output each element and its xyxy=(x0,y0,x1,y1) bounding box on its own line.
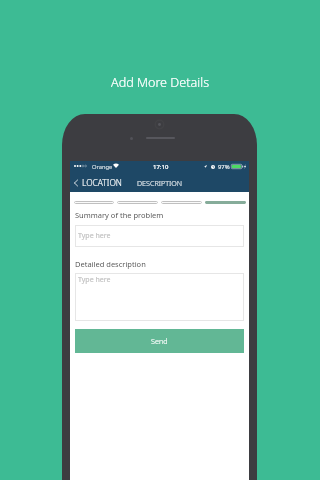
staticText: DESCRIPTION xyxy=(137,178,183,188)
button[interactable]: DESCRIPTION xyxy=(137,178,183,188)
staticText: LOCATION xyxy=(82,177,122,188)
button[interactable]: Send xyxy=(75,329,244,353)
staticText: Orange xyxy=(92,163,113,171)
button[interactable]: Type here xyxy=(75,273,244,321)
staticText: Add More Details xyxy=(0,74,320,91)
staticText: Detailed description xyxy=(75,259,146,269)
staticText: Type here xyxy=(78,231,111,241)
button[interactable]: Back xyxy=(74,177,122,188)
staticText: Summary of the problem xyxy=(75,210,164,220)
staticText: 97% xyxy=(218,163,230,171)
staticText: Send xyxy=(151,336,168,346)
other: Back xyxy=(74,180,78,186)
staticText: 17:10 xyxy=(153,163,169,171)
staticText: Type here xyxy=(78,275,111,285)
button[interactable]: Type here xyxy=(75,225,244,247)
